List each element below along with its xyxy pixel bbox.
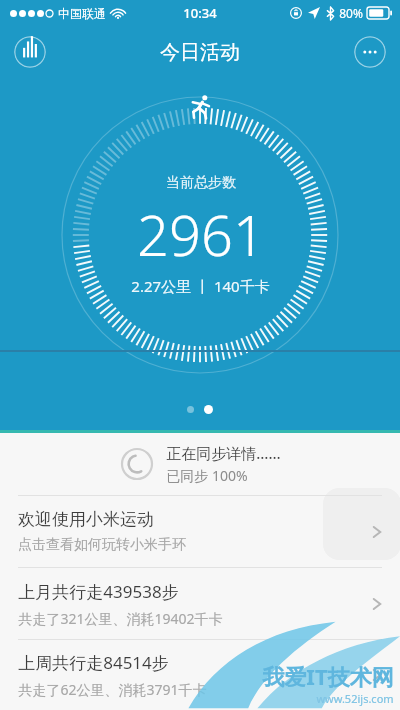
staticText: 中国联通 (58, 6, 106, 21)
staticText: 2961 (137, 196, 265, 272)
staticText: 共走了62公里、消耗3791千卡 (18, 680, 207, 699)
staticText: 共走了321公里、消耗19402千卡 (18, 609, 223, 628)
button[interactable]: 上月共行走439538步 (0, 568, 400, 639)
button[interactable]: 统计 (14, 36, 46, 68)
staticText: 10:34 (183, 4, 217, 22)
staticText: 上月共行走439538步 (18, 580, 179, 603)
button[interactable]: 上周共行走84514步 (0, 640, 400, 710)
staticText: 已同步 100% (166, 466, 248, 485)
staticText: 80% (339, 5, 363, 21)
staticText: 2.27公里 丨 140千卡 (131, 276, 270, 296)
staticText: 正在同步详情…… (166, 443, 281, 463)
staticText: 欢迎使用小米运动 (18, 509, 154, 530)
staticText: 我爱IT技术网 (262, 661, 394, 691)
staticText: 上周共行走84514步 (18, 651, 169, 674)
staticText: 今日活动 (160, 40, 240, 65)
staticText: 点击查看如何玩转小米手环 (18, 536, 186, 554)
staticText: 当前总步数 (166, 174, 236, 192)
staticText: www.52ijs.com (316, 691, 394, 706)
button[interactable]: 正在同步详情…… (0, 433, 400, 495)
button[interactable]: 更多 (354, 36, 386, 68)
button[interactable]: 欢迎使用小米运动 (0, 496, 400, 567)
